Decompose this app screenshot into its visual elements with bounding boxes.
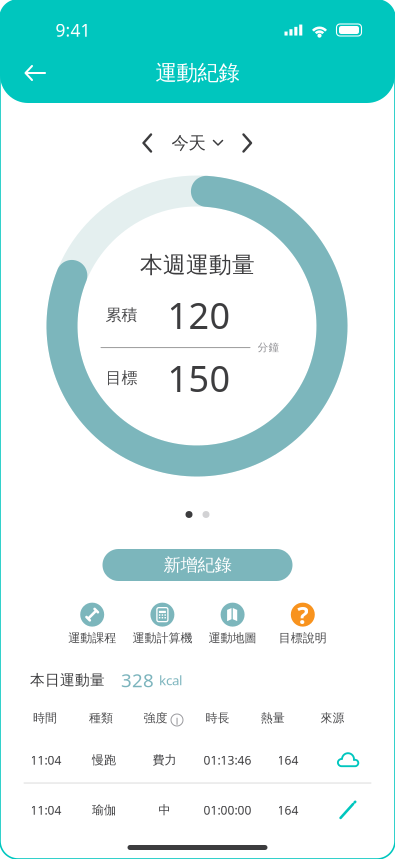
staticText: 目標 bbox=[105, 368, 137, 388]
staticText: i bbox=[175, 712, 178, 728]
button[interactable]: ? bbox=[268, 600, 338, 648]
staticText: 11:04 bbox=[30, 752, 61, 768]
staticText: 種類 bbox=[89, 711, 113, 725]
staticText: 01:13:46 bbox=[203, 752, 251, 768]
staticText: 瑜伽 bbox=[92, 803, 116, 817]
staticText: 新增紀錄 bbox=[163, 554, 231, 576]
staticText: 熱量 bbox=[261, 711, 285, 725]
button[interactable]: Next day bbox=[229, 125, 265, 161]
staticText: 本週運動量 bbox=[140, 251, 255, 279]
staticText: 164 bbox=[277, 802, 298, 818]
button[interactable]: 11:04 bbox=[0, 735, 395, 785]
staticText: 中 bbox=[158, 803, 170, 817]
staticText: kcal bbox=[159, 671, 182, 689]
staticText: 150 bbox=[167, 354, 230, 402]
button[interactable]: 運動地圖 bbox=[197, 600, 268, 648]
button[interactable]: Back bbox=[13, 51, 57, 95]
staticText: 來源 bbox=[320, 711, 344, 725]
staticText: 時長 bbox=[205, 711, 229, 725]
staticText: 164 bbox=[277, 752, 298, 768]
staticText: 目標說明 bbox=[279, 631, 327, 645]
button[interactable]: Previous day bbox=[129, 125, 165, 161]
staticText: 累積 bbox=[105, 305, 137, 325]
button[interactable]: 今天 bbox=[171, 125, 223, 161]
staticText: 9:41 bbox=[55, 18, 90, 41]
button[interactable]: 11:04 bbox=[0, 785, 395, 835]
staticText: 運動計算機 bbox=[132, 631, 192, 645]
staticText: 11:04 bbox=[30, 802, 61, 818]
staticText: 運動課程 bbox=[68, 631, 116, 645]
staticText: 運動紀錄 bbox=[155, 60, 239, 86]
button[interactable]: 新增紀錄 bbox=[102, 549, 292, 581]
staticText: 今天 bbox=[171, 132, 205, 154]
staticText: 運動地圖 bbox=[209, 631, 257, 645]
staticText: 時間 bbox=[33, 711, 57, 725]
staticText: 強度 bbox=[143, 711, 167, 725]
staticText: 328 bbox=[121, 668, 154, 692]
staticText: 本日運動量 bbox=[30, 671, 105, 689]
staticText: 費力 bbox=[152, 753, 176, 767]
staticText: 分鐘 bbox=[257, 341, 279, 354]
staticText: 慢跑 bbox=[92, 753, 116, 767]
button[interactable]: 運動計算機 bbox=[127, 600, 197, 648]
staticText: 01:00:00 bbox=[203, 802, 251, 818]
button[interactable]: 運動課程 bbox=[57, 600, 127, 648]
staticText: ? bbox=[297, 599, 308, 631]
staticText: 120 bbox=[167, 291, 230, 339]
